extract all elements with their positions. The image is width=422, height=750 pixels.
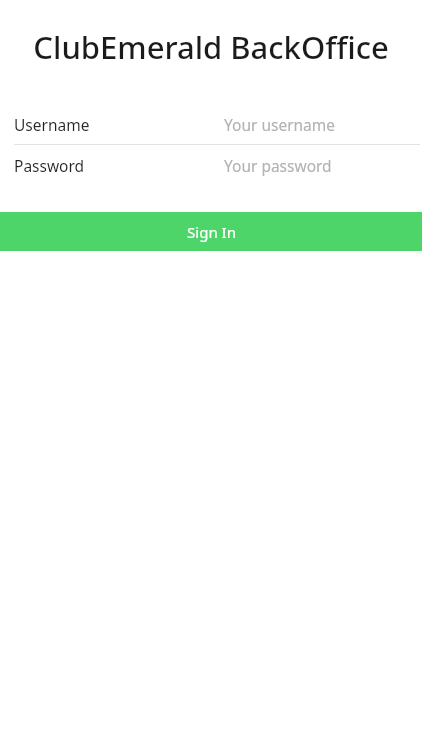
staticText: Password (14, 155, 85, 176)
staticText: Your username (224, 114, 336, 135)
staticText: Your password (224, 155, 332, 176)
staticText: Sign In (187, 222, 236, 242)
button[interactable]: Sign In (0, 212, 422, 251)
staticText: Username (14, 114, 90, 135)
button[interactable]: Username (0, 104, 422, 144)
staticText: ClubEmerald BackOffice (0, 26, 422, 68)
button[interactable]: Password (0, 145, 422, 185)
